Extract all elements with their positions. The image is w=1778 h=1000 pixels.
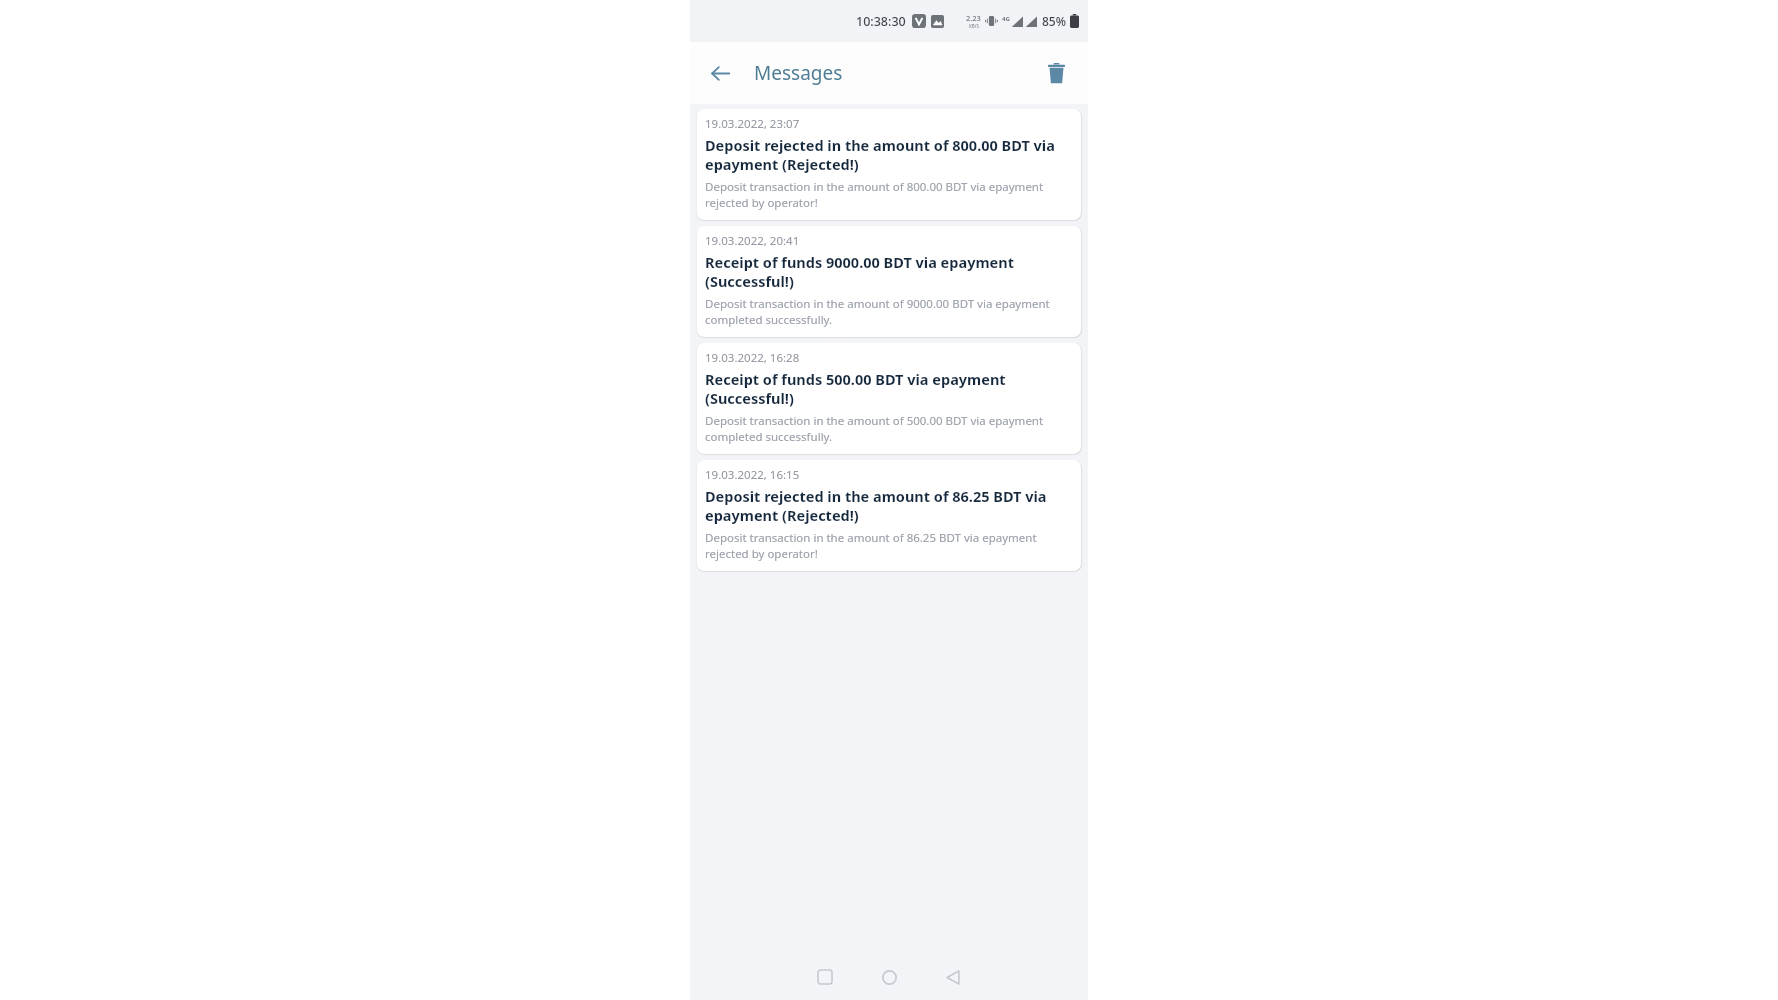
button[interactable]: Back <box>932 956 974 998</box>
staticText: Deposit rejected in the amount of 86.25 … <box>705 486 1071 526</box>
staticText: Deposit transaction in the amount of 900… <box>705 296 1071 328</box>
button[interactable]: 19.03.2022, 20:41 <box>697 226 1081 337</box>
staticText: 19.03.2022, 16:15 <box>705 467 800 483</box>
staticText: 4G <box>1002 15 1010 23</box>
staticText: 19.03.2022, 16:28 <box>705 350 800 366</box>
staticText: 19.03.2022, 23:07 <box>705 116 800 132</box>
staticText: Receipt of funds 9000.00 BDT via epaymen… <box>705 252 1071 292</box>
button[interactable]: Recent apps <box>804 956 846 998</box>
staticText: 2.23 <box>966 13 981 23</box>
button[interactable]: Back <box>698 51 742 95</box>
button[interactable]: Delete all messages <box>1034 51 1078 95</box>
staticText: Messages <box>754 60 843 86</box>
staticText: 10:38:30 <box>856 13 906 30</box>
staticText: 19.03.2022, 20:41 <box>705 233 800 249</box>
staticText: 85% <box>1042 13 1066 29</box>
staticText: Deposit transaction in the amount of 800… <box>705 179 1071 211</box>
staticText: Receipt of funds 500.00 BDT via epayment… <box>705 369 1071 409</box>
button[interactable]: Home <box>868 956 910 998</box>
button[interactable]: 19.03.2022, 16:15 <box>697 460 1081 571</box>
staticText: Deposit transaction in the amount of 500… <box>705 413 1071 445</box>
staticText: Deposit transaction in the amount of 86.… <box>705 530 1071 562</box>
staticText: Deposit rejected in the amount of 800.00… <box>705 135 1071 175</box>
staticText: KB/S <box>969 23 979 29</box>
button[interactable]: 19.03.2022, 23:07 <box>697 109 1081 220</box>
button[interactable]: 19.03.2022, 16:28 <box>697 343 1081 454</box>
